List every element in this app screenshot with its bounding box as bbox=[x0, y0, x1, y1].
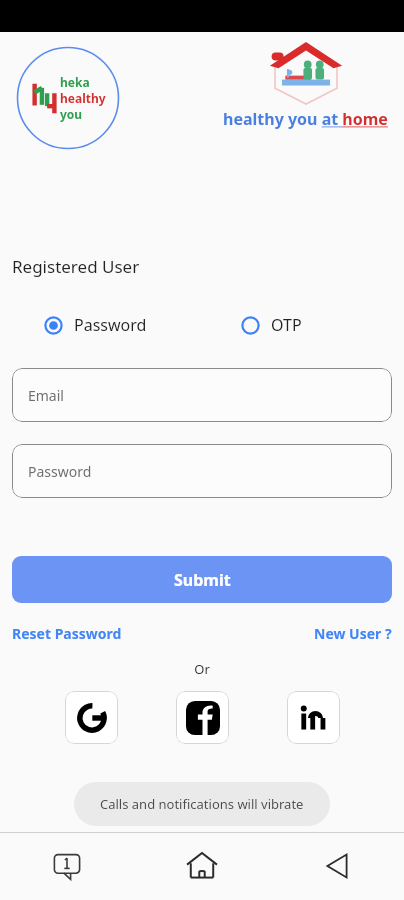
staticText: Password bbox=[74, 314, 147, 336]
staticText: healthy bbox=[60, 90, 106, 106]
button[interactable]: OTP bbox=[237, 310, 306, 340]
button[interactable]: Back bbox=[269, 832, 404, 900]
button[interactable]: Password bbox=[40, 310, 151, 340]
button[interactable]: Email bbox=[12, 368, 392, 422]
staticText: Reset Password bbox=[12, 624, 122, 643]
button[interactable]: Home bbox=[134, 832, 269, 900]
staticText: Or bbox=[0, 660, 404, 678]
staticText: you bbox=[60, 106, 83, 122]
staticText: Submit bbox=[174, 569, 231, 591]
button[interactable]: Sign in with Facebook bbox=[176, 691, 229, 744]
staticText: Registered User bbox=[12, 255, 140, 278]
staticText: healthy you at home bbox=[223, 108, 388, 130]
button[interactable]: Password bbox=[12, 444, 392, 498]
staticText: New User ? bbox=[314, 624, 392, 643]
staticText: OTP bbox=[271, 314, 302, 336]
staticText: heka bbox=[60, 74, 90, 90]
staticText: Email bbox=[28, 386, 64, 405]
button[interactable]: New User ? bbox=[314, 624, 392, 643]
button[interactable]: Sign in with LinkedIn bbox=[287, 691, 340, 744]
button[interactable]: Reset Password bbox=[12, 624, 122, 643]
staticText: Calls and notifications will vibrate bbox=[100, 795, 304, 813]
button[interactable]: Submit bbox=[12, 556, 392, 603]
button[interactable]: Recents bbox=[0, 832, 134, 900]
staticText: Password bbox=[28, 462, 92, 481]
button[interactable]: Sign in with Google bbox=[65, 691, 118, 744]
